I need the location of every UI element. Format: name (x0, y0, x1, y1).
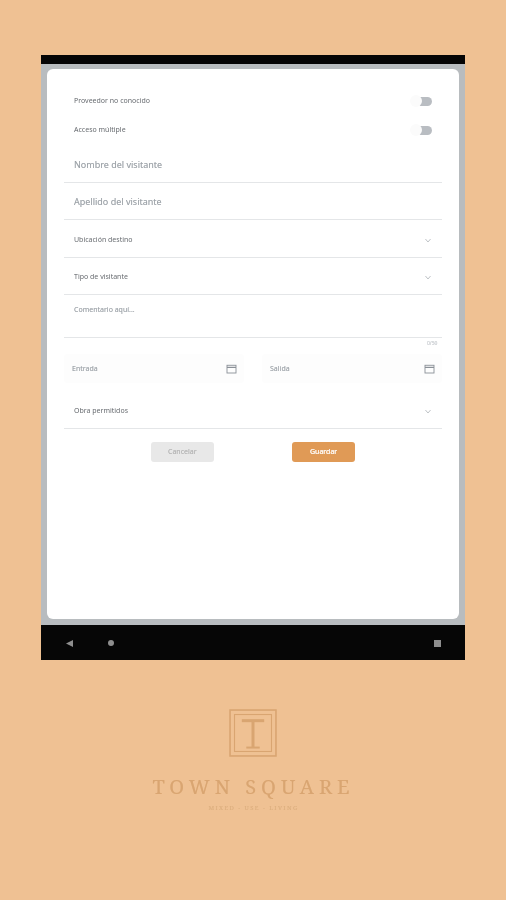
button[interactable]: Obra permitidos (64, 393, 442, 429)
button[interactable]: Recent apps (425, 631, 449, 655)
staticText: Nombre del visitante (74, 158, 163, 170)
staticText: Comentario aquí... (74, 305, 135, 315)
staticText: 0/50 (427, 340, 438, 347)
staticText: Apellido del visitante (74, 195, 162, 207)
staticText: Cancelar (168, 447, 197, 457)
staticText: Obra permitidos (74, 406, 128, 416)
staticText: Tipo de visitante (74, 272, 128, 282)
staticText: Guardar (310, 447, 338, 457)
button[interactable]: Tipo de visitante (64, 259, 442, 295)
button[interactable]: Nombre del visitante (64, 146, 442, 183)
button[interactable]: Back (57, 631, 81, 655)
button[interactable]: Proveedor no conocido (64, 86, 442, 115)
button[interactable]: Apellido del visitante (64, 183, 442, 220)
staticText: Acceso múltiple (74, 125, 126, 135)
button[interactable]: Home (99, 631, 123, 655)
staticText: Salida (270, 364, 290, 374)
button[interactable]: Acceso múltiple (64, 115, 442, 144)
staticText: Entrada (72, 364, 98, 374)
button[interactable]: Comentario aquí... (64, 297, 442, 338)
other: Select date (425, 364, 434, 373)
button[interactable]: Ubicación destino (64, 222, 442, 258)
button[interactable]: Entrada (64, 354, 244, 383)
other: Select date (227, 364, 236, 373)
staticText: TOWN SQUARE (152, 773, 355, 800)
button[interactable]: Guardar (292, 442, 355, 462)
staticText: Proveedor no conocido (74, 96, 151, 106)
button[interactable]: Salida (262, 354, 442, 383)
button[interactable]: Cancelar (151, 442, 214, 462)
staticText: Ubicación destino (74, 235, 133, 245)
staticText: MIXED - USE - LIVING (208, 804, 299, 812)
